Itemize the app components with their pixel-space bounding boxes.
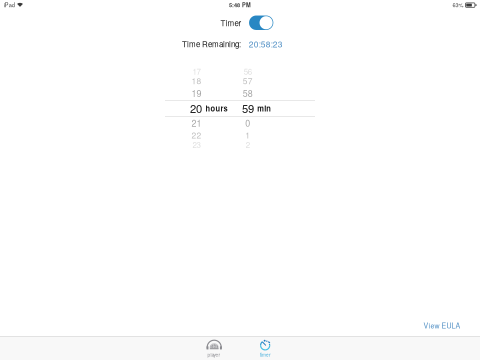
staticText: hours: [205, 103, 227, 114]
staticText: min: [257, 103, 271, 114]
staticText: 20: [190, 100, 202, 116]
staticText: 20:58:23: [249, 38, 283, 50]
staticText: 17: [192, 66, 200, 77]
staticText: timer: [260, 351, 271, 358]
staticText: 58: [243, 87, 253, 99]
staticText: View EULA: [423, 320, 460, 330]
staticText: Time Remaining:: [182, 38, 241, 50]
staticText: 56: [244, 66, 252, 77]
staticText: 21: [191, 117, 201, 129]
staticText: 23: [192, 139, 200, 150]
button[interactable]: timer: [240, 336, 290, 360]
staticText: 19: [191, 87, 201, 99]
button[interactable]: View EULA: [421, 318, 462, 332]
staticText: 5:48 PM: [229, 1, 251, 9]
staticText: 1: [245, 129, 250, 141]
button[interactable]: player: [189, 336, 239, 360]
staticText: 0: [245, 117, 250, 129]
staticText: 18: [191, 75, 201, 87]
staticText: iPad: [4, 1, 15, 9]
button[interactable]: Timer: [249, 15, 273, 30]
staticText: 2: [246, 139, 250, 150]
staticText: Timer: [220, 17, 241, 28]
staticText: 22: [191, 129, 201, 141]
staticText: 63%: [452, 1, 463, 9]
staticText: player: [207, 351, 220, 358]
staticText: 59: [242, 100, 254, 116]
staticText: 57: [243, 75, 253, 87]
